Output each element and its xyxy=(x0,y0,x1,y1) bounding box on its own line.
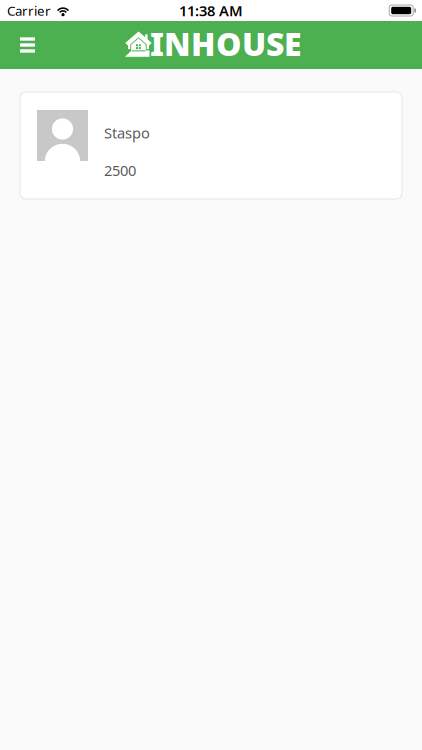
staticText: 2500 xyxy=(104,160,136,180)
staticText: 11:38 AM xyxy=(179,1,243,20)
staticText: Carrier xyxy=(7,2,51,19)
staticText: INHOUSE xyxy=(150,22,302,65)
button[interactable]: Staspo xyxy=(20,92,402,199)
staticText: Staspo xyxy=(104,123,150,142)
button[interactable]: Menu xyxy=(0,21,49,69)
